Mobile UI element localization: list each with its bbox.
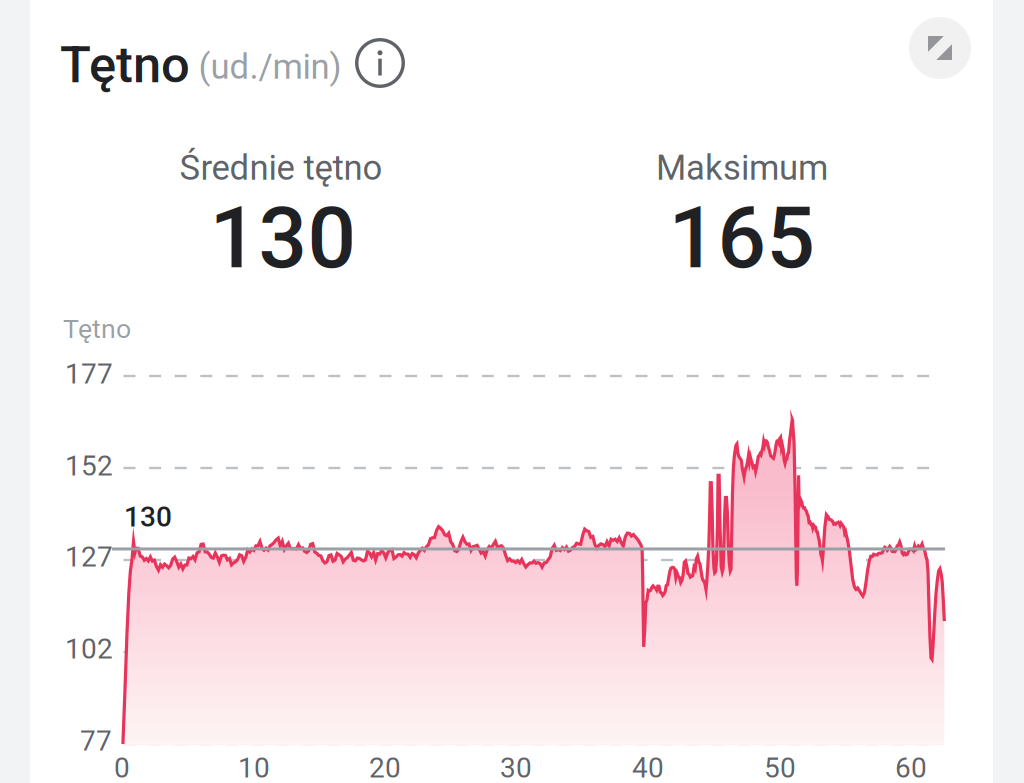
- staticText: 130: [209, 188, 356, 288]
- staticText: 10: [238, 752, 270, 783]
- staticText: 0: [114, 752, 130, 783]
- staticText: 130: [124, 501, 172, 533]
- staticText: (ud./min): [198, 47, 341, 87]
- staticText: 30: [500, 752, 532, 783]
- staticText: 165: [668, 188, 815, 288]
- staticText: 152: [65, 450, 113, 482]
- staticText: 40: [632, 752, 664, 783]
- staticText: 127: [65, 541, 113, 573]
- staticText: 20: [369, 752, 401, 783]
- button[interactable]: Rozwiń wykres: [909, 17, 971, 79]
- staticText: 177: [65, 358, 113, 390]
- staticText: 60: [895, 752, 927, 783]
- button[interactable]: Informacje o tętnie: [355, 38, 405, 88]
- staticText: Tętno: [60, 35, 190, 95]
- staticText: 50: [764, 752, 796, 783]
- staticText: Maksimum: [656, 148, 828, 188]
- staticText: 102: [65, 633, 113, 665]
- staticText: 77: [80, 725, 112, 757]
- staticText: Średnie tętno: [179, 148, 382, 188]
- staticText: Tętno: [63, 313, 131, 345]
